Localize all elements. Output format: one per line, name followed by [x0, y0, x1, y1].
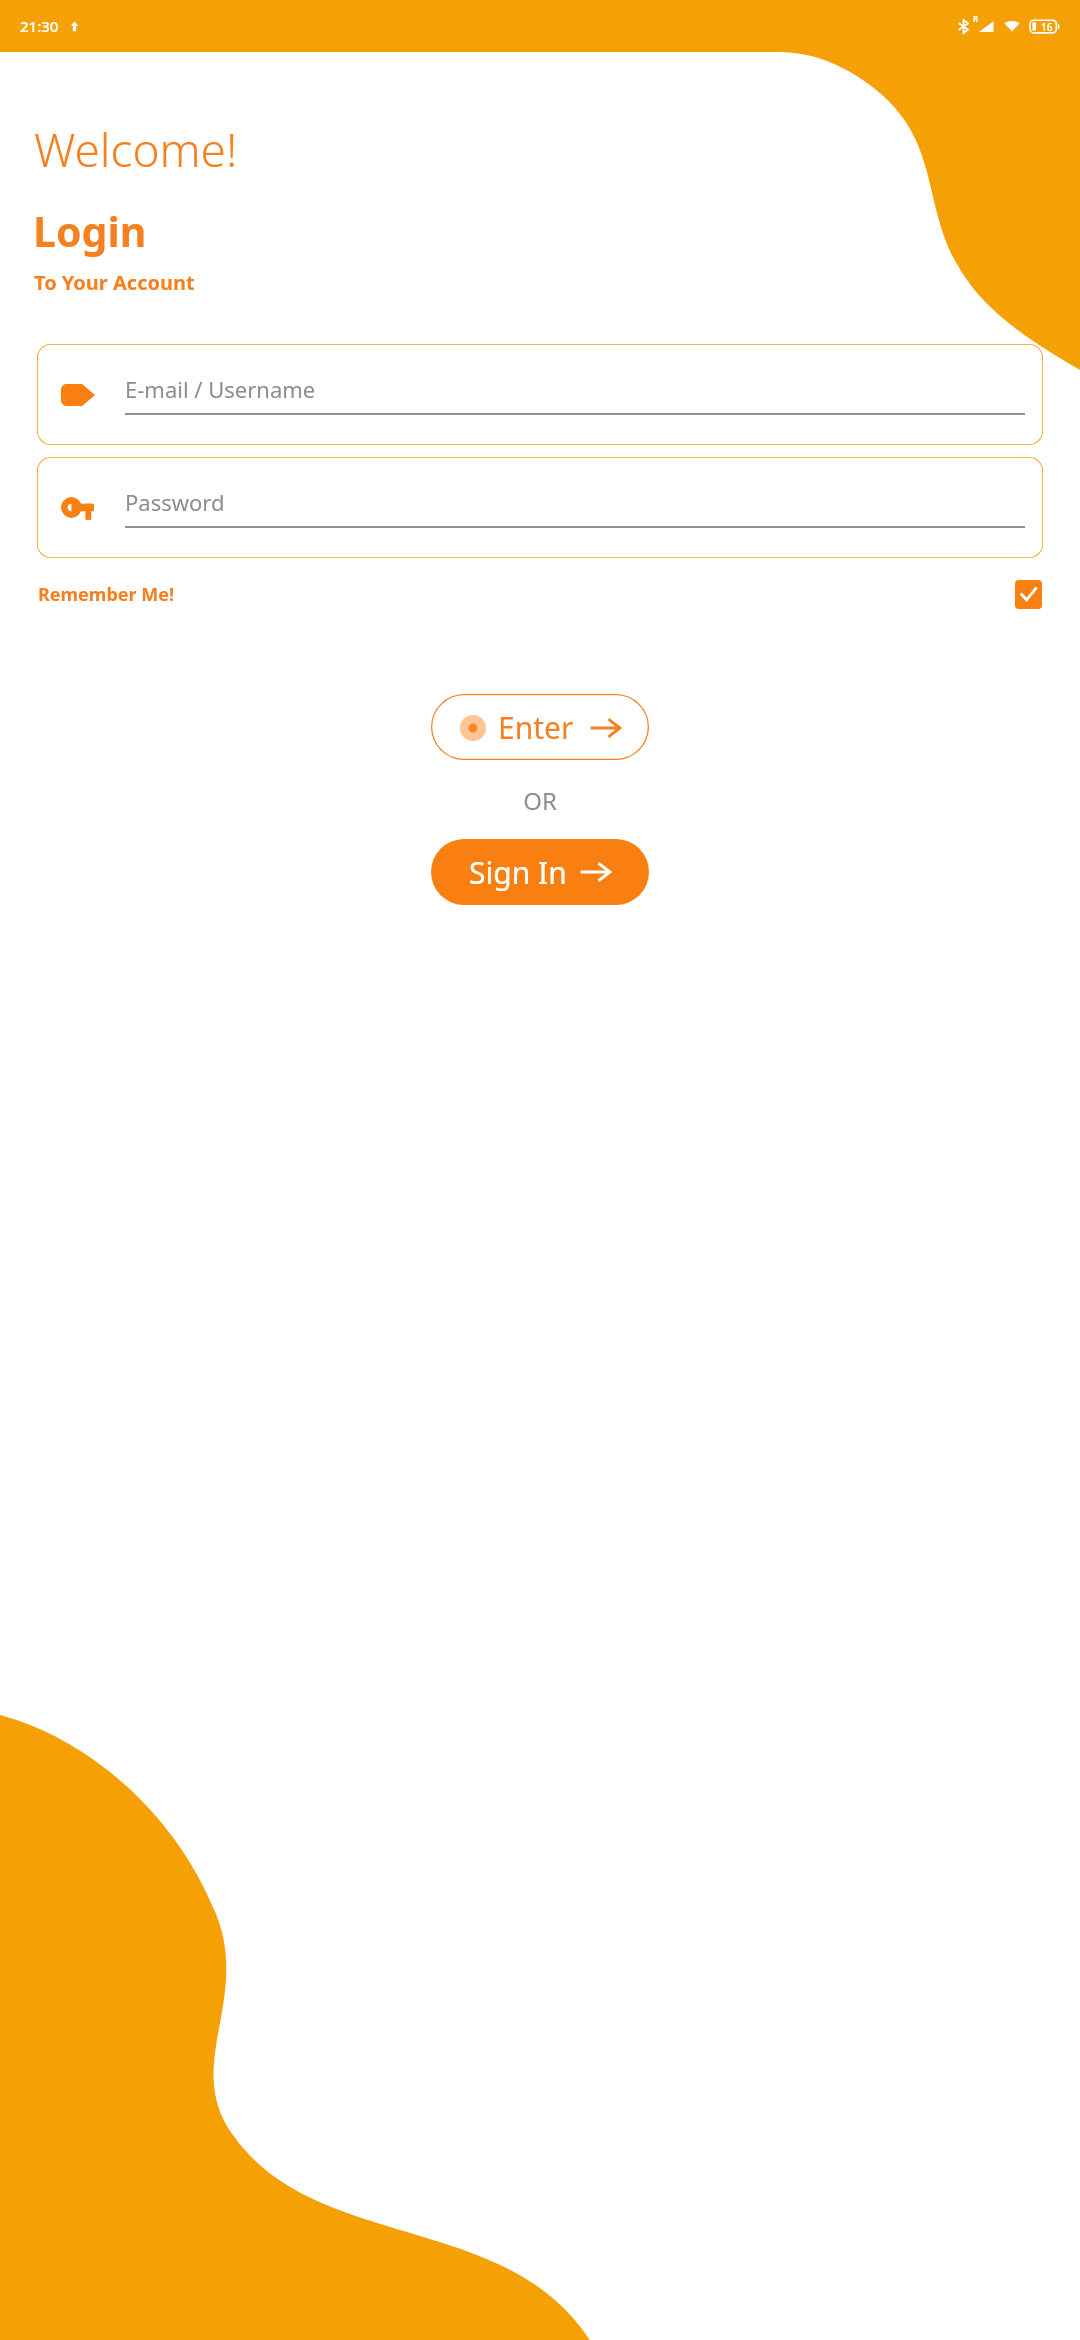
staticText: 21:30 — [20, 16, 59, 36]
button[interactable]: Password — [37, 457, 1043, 558]
button[interactable]: Remember Me! — [38, 572, 1042, 616]
staticText: Enter — [498, 707, 574, 748]
button[interactable]: E-mail or username — [37, 344, 1043, 445]
staticText: Login — [33, 203, 147, 259]
staticText: OR — [0, 784, 1080, 817]
staticText: Password — [125, 487, 225, 517]
staticText: Sign In — [469, 852, 567, 893]
staticText: E-mail / Username — [125, 374, 316, 404]
staticText: Remember Me! — [38, 582, 175, 607]
button[interactable]: Sign In — [431, 839, 649, 905]
staticText: Welcome! — [34, 118, 238, 181]
staticText: To Your Account — [34, 269, 195, 296]
staticText: 16 — [1041, 20, 1053, 34]
staticText: R — [973, 13, 979, 24]
button[interactable]: Enter — [431, 694, 649, 760]
